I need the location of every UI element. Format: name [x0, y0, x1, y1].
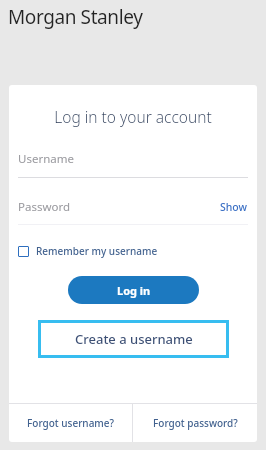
staticText: Log in to your account — [9, 106, 257, 127]
staticText: Forgot password? — [153, 416, 238, 430]
staticText: Morgan Stanley — [8, 4, 143, 30]
staticText: Username — [18, 151, 74, 167]
button[interactable]: Forgot username? — [9, 404, 132, 442]
button[interactable]: Username — [18, 151, 248, 178]
staticText: Show — [220, 200, 248, 214]
button[interactable]: Create a username — [38, 320, 229, 358]
staticText: Remember my username — [36, 244, 158, 258]
button[interactable]: Forgot password? — [133, 404, 257, 442]
button[interactable]: Log in — [68, 276, 199, 304]
staticText: Forgot username? — [27, 416, 115, 430]
staticText: Create a username — [75, 330, 193, 348]
button[interactable]: Password — [18, 199, 220, 215]
button[interactable]: Show — [220, 200, 248, 214]
button[interactable]: Remember my username — [18, 244, 158, 258]
staticText: Log in — [117, 283, 151, 298]
